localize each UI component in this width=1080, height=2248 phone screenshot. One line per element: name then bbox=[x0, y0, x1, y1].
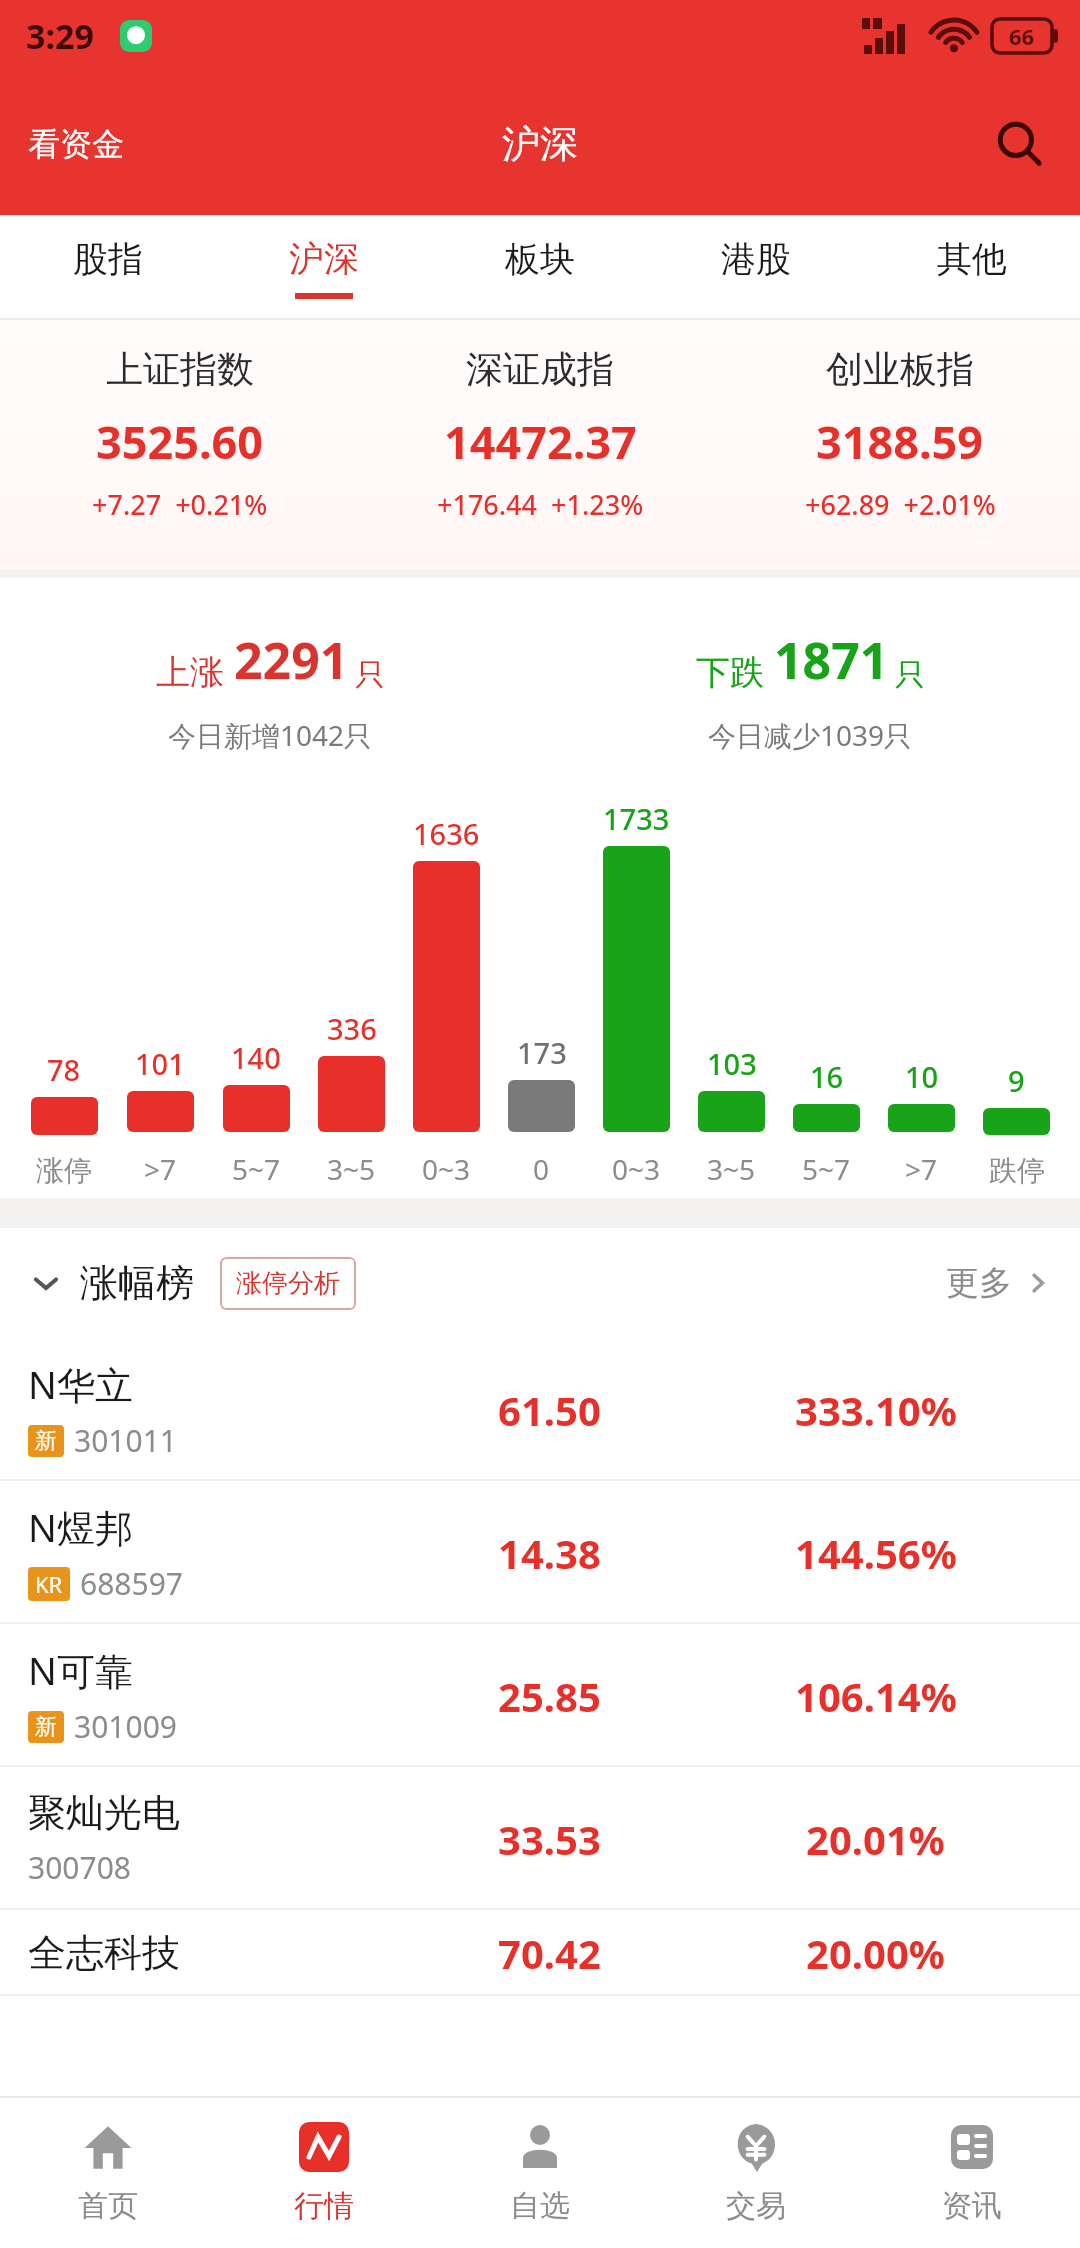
staticText: 自选 bbox=[510, 2187, 570, 2225]
staticText: 173 bbox=[517, 1033, 567, 1072]
staticText: 2291 bbox=[234, 626, 349, 694]
staticText: 3~5 bbox=[707, 1150, 756, 1188]
staticText: 1636 bbox=[413, 814, 480, 853]
staticText: 3525.60 bbox=[96, 411, 264, 472]
staticText: 交易 bbox=[726, 2187, 786, 2225]
staticText: KR bbox=[35, 1569, 63, 1599]
button[interactable]: 1733 bbox=[589, 799, 684, 1188]
staticText: 0~3 bbox=[422, 1150, 471, 1188]
button[interactable]: 101 bbox=[112, 1044, 208, 1188]
staticText: 140 bbox=[231, 1038, 281, 1077]
button[interactable]: 股指 bbox=[0, 215, 216, 320]
staticText: 688597 bbox=[80, 1563, 183, 1604]
staticText: 深证成指 bbox=[466, 346, 614, 393]
staticText: 3188.59 bbox=[816, 411, 984, 472]
staticText: 3:29 bbox=[26, 13, 94, 59]
staticText: N可靠 bbox=[28, 1644, 133, 1696]
staticText: 板块 bbox=[505, 237, 575, 281]
staticText: 上证指数 bbox=[106, 346, 254, 393]
button[interactable]: 1636 bbox=[399, 814, 494, 1188]
staticText: 61.50 bbox=[498, 1383, 601, 1437]
button[interactable]: 下跌 bbox=[540, 578, 1080, 768]
staticText: 78 bbox=[47, 1050, 81, 1089]
staticText: 只 bbox=[355, 656, 385, 694]
button[interactable]: 上涨 bbox=[0, 578, 540, 768]
button[interactable]: 173 bbox=[494, 1033, 589, 1188]
staticText: 333.10% bbox=[795, 1383, 957, 1437]
button[interactable]: 看资金 bbox=[28, 124, 124, 164]
button[interactable]: N华立 bbox=[0, 1338, 1080, 1481]
staticText: >7 bbox=[905, 1150, 938, 1188]
staticText: 全志科技 bbox=[28, 1929, 180, 1977]
button[interactable]: 沪深 bbox=[216, 215, 432, 320]
staticText: 创业板指 bbox=[826, 346, 974, 393]
button[interactable]: 336 bbox=[304, 1009, 399, 1188]
button[interactable]: 其他 bbox=[864, 215, 1080, 320]
staticText: 144.56% bbox=[795, 1526, 957, 1580]
staticText: 资讯 bbox=[942, 2187, 1002, 2225]
button[interactable]: 10 bbox=[874, 1057, 969, 1188]
staticText: 3~5 bbox=[327, 1150, 376, 1188]
button[interactable]: 9 bbox=[969, 1061, 1064, 1188]
staticText: 新 bbox=[35, 1427, 57, 1455]
staticText: 沪深 bbox=[502, 120, 578, 168]
staticText: 101 bbox=[135, 1044, 185, 1083]
button[interactable]: N煜邦 bbox=[0, 1481, 1080, 1624]
button[interactable]: 更多 bbox=[946, 1262, 1052, 1304]
button[interactable]: 聚灿光电 bbox=[0, 1767, 1080, 1910]
button[interactable]: 涨停分析 bbox=[220, 1257, 356, 1310]
staticText: 103 bbox=[707, 1044, 757, 1083]
staticText: 0 bbox=[533, 1150, 550, 1188]
button[interactable]: 板块 bbox=[432, 215, 648, 320]
staticText: 300708 bbox=[28, 1847, 131, 1888]
button[interactable]: 创业板指 bbox=[720, 346, 1080, 570]
staticText: 20.01% bbox=[806, 1812, 945, 1866]
staticText: 70.42 bbox=[498, 1926, 601, 1980]
staticText: +62.89 +2.01% bbox=[805, 486, 996, 523]
staticText: 其他 bbox=[937, 237, 1007, 281]
button[interactable]: 资讯 bbox=[864, 2096, 1080, 2248]
staticText: 沪深 bbox=[289, 237, 359, 281]
button[interactable]: 行情 bbox=[216, 2096, 432, 2248]
staticText: 今日新增1042只 bbox=[168, 716, 373, 754]
staticText: 25.85 bbox=[498, 1669, 601, 1723]
button[interactable]: 16 bbox=[779, 1057, 874, 1188]
staticText: 涨幅榜 bbox=[80, 1259, 194, 1307]
staticText: 66 bbox=[1009, 21, 1035, 51]
button[interactable]: 深证成指 bbox=[360, 346, 720, 570]
staticText: >7 bbox=[144, 1150, 177, 1188]
staticText: 0~3 bbox=[612, 1150, 661, 1188]
staticText: 下跌 bbox=[696, 651, 764, 694]
button[interactable]: 全志科技 bbox=[0, 1910, 1080, 1996]
staticText: 港股 bbox=[721, 237, 791, 281]
staticText: 20.00% bbox=[806, 1926, 945, 1980]
button[interactable]: 103 bbox=[684, 1044, 779, 1188]
button[interactable]: 交易 bbox=[648, 2096, 864, 2248]
button[interactable]: 140 bbox=[208, 1038, 304, 1188]
staticText: 5~7 bbox=[232, 1150, 281, 1188]
staticText: 1871 bbox=[774, 626, 889, 694]
staticText: 9 bbox=[1008, 1061, 1025, 1100]
staticText: +7.27 +0.21% bbox=[92, 486, 268, 523]
button[interactable]: N可靠 bbox=[0, 1624, 1080, 1767]
staticText: 336 bbox=[327, 1009, 377, 1048]
staticText: 301011 bbox=[74, 1420, 177, 1461]
staticText: 上涨 bbox=[156, 651, 224, 694]
button[interactable]: 上证指数 bbox=[0, 346, 360, 570]
staticText: 行情 bbox=[294, 2187, 354, 2225]
staticText: 16 bbox=[810, 1057, 844, 1096]
staticText: 首页 bbox=[78, 2187, 138, 2225]
button[interactable]: 港股 bbox=[648, 215, 864, 320]
button[interactable]: 78 bbox=[16, 1050, 112, 1188]
staticText: 301009 bbox=[74, 1706, 177, 1747]
staticText: 14472.37 bbox=[444, 411, 637, 472]
button[interactable]: 自选 bbox=[432, 2096, 648, 2248]
button[interactable]: 首页 bbox=[0, 2096, 216, 2248]
button[interactable]: Search bbox=[988, 112, 1052, 176]
staticText: 涨停分析 bbox=[236, 1267, 340, 1300]
staticText: 106.14% bbox=[795, 1669, 957, 1723]
staticText: 更多 bbox=[946, 1262, 1012, 1304]
staticText: 10 bbox=[905, 1057, 939, 1096]
staticText: N煜邦 bbox=[28, 1501, 133, 1553]
staticText: +176.44 +1.23% bbox=[437, 486, 644, 523]
